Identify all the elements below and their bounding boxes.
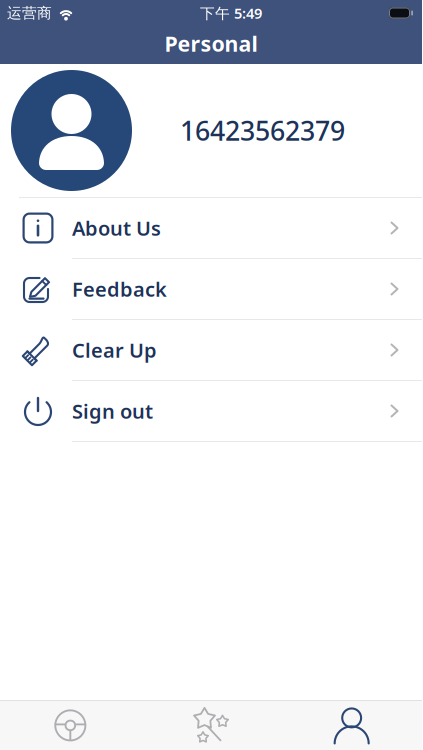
staticText: Sign out [72, 398, 153, 424]
staticText: 16423562379 [180, 113, 345, 148]
button[interactable]: About Us [0, 198, 422, 259]
staticText: Clear Up [72, 337, 157, 363]
button[interactable]: Feedback [0, 259, 422, 320]
staticText: 运营商 [7, 4, 52, 22]
staticText: Feedback [72, 276, 167, 302]
staticText: Personal [164, 29, 257, 58]
button[interactable]: Sign out [0, 381, 422, 442]
button[interactable]: Effects [141, 701, 281, 750]
button[interactable]: Drive [0, 701, 141, 750]
staticText: 下午 5:49 [200, 3, 262, 23]
button[interactable]: Personal [281, 701, 422, 750]
button[interactable]: Clear Up [0, 320, 422, 381]
staticText: About Us [72, 215, 161, 241]
